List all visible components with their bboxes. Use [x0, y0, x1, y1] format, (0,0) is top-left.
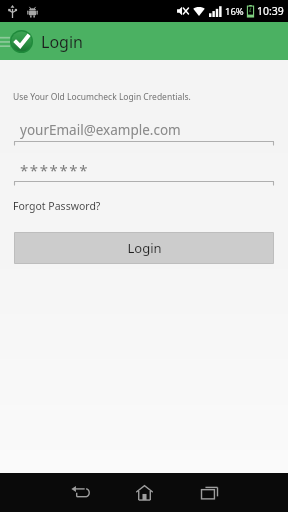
button[interactable]: Recent apps: [188, 473, 230, 512]
staticText: Login: [127, 239, 162, 257]
staticText: 10:39: [257, 4, 284, 18]
button[interactable]: Back: [59, 473, 101, 512]
button[interactable]: *******: [14, 158, 274, 187]
button[interactable]: Forgot Password?: [13, 199, 101, 213]
staticText: Login: [41, 31, 83, 53]
staticText: Forgot Password?: [13, 199, 101, 213]
button[interactable]: Open navigation menu: [0, 26, 11, 56]
staticText: *******: [20, 160, 90, 180]
button[interactable]: Home: [123, 473, 165, 512]
button[interactable]: Login: [14, 232, 274, 264]
button[interactable]: yourEmail@example.com: [14, 118, 274, 147]
staticText: 16%: [225, 5, 244, 18]
staticText: yourEmail@example.com: [20, 121, 181, 139]
staticText: Use Your Old Locumcheck Login Credential…: [13, 91, 191, 103]
